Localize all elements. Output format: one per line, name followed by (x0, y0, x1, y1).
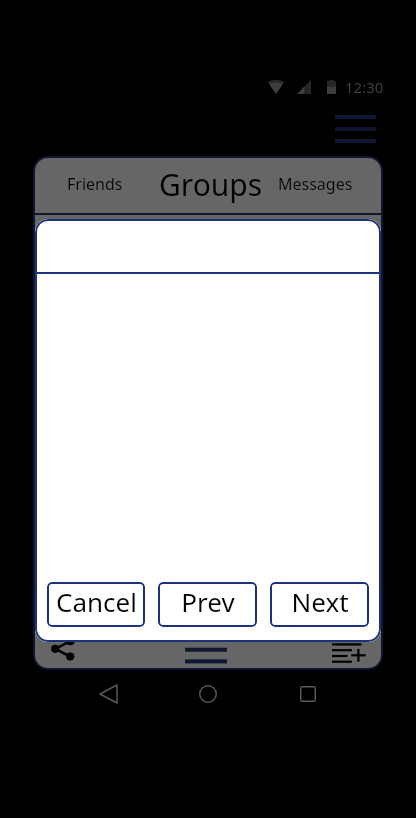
button[interactable]: Add to list (322, 634, 376, 668)
staticText: Groups (159, 164, 263, 205)
button[interactable]: Share (43, 629, 83, 668)
button[interactable]: Back (84, 670, 132, 718)
staticText: Next (291, 584, 349, 619)
button[interactable]: Home (184, 670, 232, 718)
staticText: Messages (278, 173, 353, 195)
button[interactable]: Messages (276, 158, 354, 213)
staticText: 12:30 (345, 77, 384, 97)
button[interactable]: Cancel (47, 582, 145, 627)
staticText: Prev (181, 584, 235, 619)
button[interactable]: Menu (335, 115, 376, 143)
button[interactable]: Next (270, 582, 369, 627)
staticText: Friends (67, 173, 123, 195)
button[interactable]: Menu (182, 630, 230, 668)
button[interactable]: Groups (156, 158, 266, 213)
button[interactable]: Friends (64, 158, 126, 213)
staticText: Cancel (56, 584, 137, 619)
button[interactable]: Prev (158, 582, 257, 627)
button[interactable]: Recents (284, 670, 332, 718)
